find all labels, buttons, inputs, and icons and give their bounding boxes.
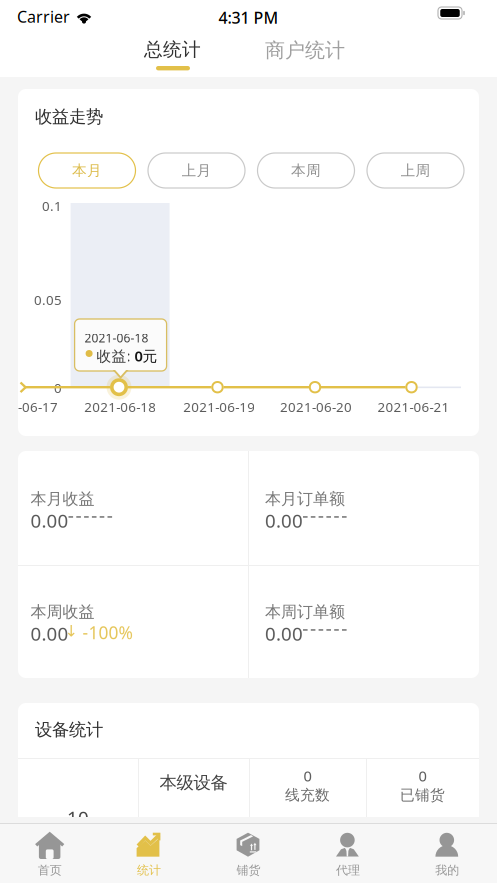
staticText: 本级设备 <box>159 772 227 793</box>
staticText: 上月 <box>181 161 211 179</box>
staticText: 0 <box>54 379 62 397</box>
staticText: 已铺货 <box>400 786 445 804</box>
staticText: 0.00 <box>30 621 68 646</box>
staticText: 线充数 <box>285 786 330 804</box>
staticText: 0.05 <box>34 291 62 309</box>
staticText: 收益走势 <box>35 106 103 127</box>
staticText: 0.00 <box>265 508 303 533</box>
staticText: 本月收益 <box>30 489 94 509</box>
staticText: 2021-06-18 <box>85 330 149 346</box>
button[interactable]: 上周 <box>367 153 464 188</box>
staticText: 本周 <box>291 161 321 179</box>
staticText: 铺货 <box>236 863 260 878</box>
staticText: 0.1 <box>42 197 62 215</box>
staticText: 收益: <box>97 346 135 365</box>
staticText: 代理 <box>336 863 360 878</box>
button[interactable]: 商户统计 <box>254 34 354 78</box>
staticText: -100% <box>82 621 132 644</box>
staticText: 4:31 PM <box>218 7 278 28</box>
staticText: 0 <box>303 766 311 785</box>
staticText: 本周订单额 <box>265 602 345 622</box>
button[interactable]: 总统计 <box>133 34 213 78</box>
staticText: 2021-06-18 <box>84 398 156 416</box>
staticText: 0.00 <box>30 508 68 533</box>
button[interactable]: 本周 <box>257 153 354 188</box>
staticText: 2021-06-21 <box>377 398 449 416</box>
staticText: 10 <box>67 805 89 830</box>
staticText: 统计 <box>137 863 161 878</box>
button[interactable]: 本月 <box>38 153 135 188</box>
button[interactable]: 统计 <box>99 823 199 881</box>
staticText: 0 <box>418 766 426 785</box>
staticText: 本月订单额 <box>265 489 345 509</box>
staticText: Carrier <box>17 6 70 27</box>
staticText: 本周收益 <box>30 602 94 622</box>
staticText: ↓ <box>64 622 77 640</box>
staticText: 上周 <box>400 161 430 179</box>
staticText: 0元 <box>135 346 158 365</box>
button[interactable]: 我的 <box>398 823 497 881</box>
staticText: 商户统计 <box>265 38 345 63</box>
staticText: 2021-06-17 <box>0 398 58 416</box>
button[interactable]: 上月 <box>148 153 245 188</box>
staticText: 首页 <box>38 863 62 878</box>
button[interactable]: 代理 <box>298 823 398 881</box>
staticText: 设备统计 <box>35 719 103 740</box>
staticText: 2021-06-19 <box>183 398 255 416</box>
staticText: 0.00 <box>265 621 303 646</box>
button[interactable]: 铺货 <box>199 823 298 881</box>
button[interactable]: 首页 <box>0 823 99 881</box>
staticText: 我的 <box>435 863 459 878</box>
staticText: 总统计 <box>144 38 201 61</box>
staticText: 2021-06-20 <box>280 398 352 416</box>
staticText: 本月 <box>72 161 102 179</box>
